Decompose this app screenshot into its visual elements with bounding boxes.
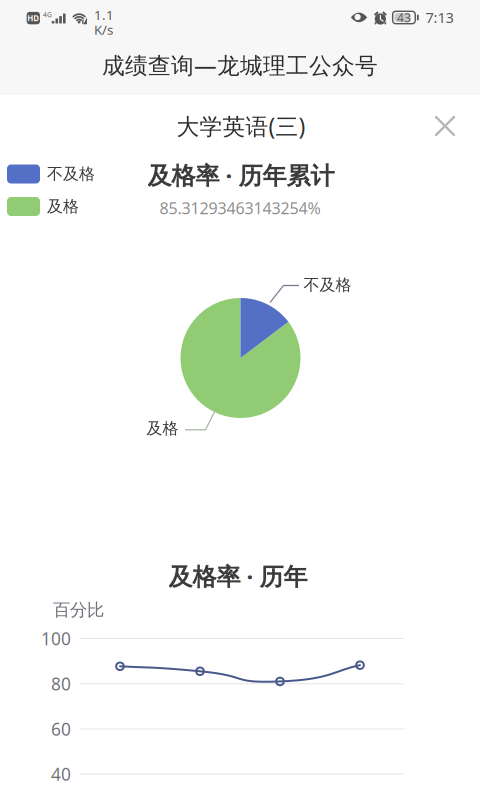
staticText: 不及格 [303,275,351,295]
staticText: 及格 [146,419,178,438]
staticText: 百分比 [53,599,104,621]
staticText: K/s [94,21,113,38]
staticText: 4G [43,10,52,19]
staticText: 60 [51,717,71,740]
staticText: 40 [51,763,71,786]
staticText: 大学英语(三) [176,111,305,141]
staticText: 7:13 [425,8,453,27]
staticText: 及格 [47,197,79,216]
staticText: 成绩查询—龙城理工公众号 [102,50,378,80]
staticText: HD [27,13,39,23]
staticText: 43 [397,9,411,25]
staticText: 及格率 · 历年累计 [147,159,334,191]
staticText: 80 [51,672,71,695]
staticText: 100 [41,627,71,650]
staticText: 不及格 [47,164,95,184]
staticText: 85.31293463143254% [159,197,320,219]
button[interactable]: 关闭 [422,103,468,149]
staticText: 1.1 [94,6,114,24]
staticText: 及格率 · 历年 [168,560,307,592]
